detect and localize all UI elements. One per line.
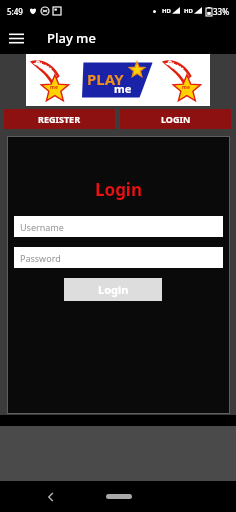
staticText: PLAY [165,58,185,76]
staticText: PLAY [33,58,53,76]
staticText: 5:49 [7,6,23,17]
button[interactable]: Back [40,486,62,508]
staticText: Password [20,252,61,264]
staticText: me [114,81,132,96]
staticText: REGISTER [38,113,81,125]
staticText: 33% [213,6,229,17]
button[interactable]: REGISTER [4,109,115,129]
staticText: me [182,84,190,91]
staticText: Play me [47,29,96,47]
staticText: HD [162,7,171,15]
staticText: HD [184,7,193,15]
button[interactable]: LOGIN [120,109,231,129]
staticText: Username [20,221,64,233]
staticText: Login [98,282,129,297]
staticText: Login [7,178,230,201]
button[interactable]: Password [14,247,223,268]
staticText: LOGIN [161,113,191,125]
staticText: PLAY [87,69,124,89]
button[interactable]: Menu [0,22,32,54]
button[interactable]: Username [14,216,223,237]
staticText: me [50,84,58,91]
button[interactable]: Login [64,278,162,301]
button[interactable]: Home [106,494,132,499]
